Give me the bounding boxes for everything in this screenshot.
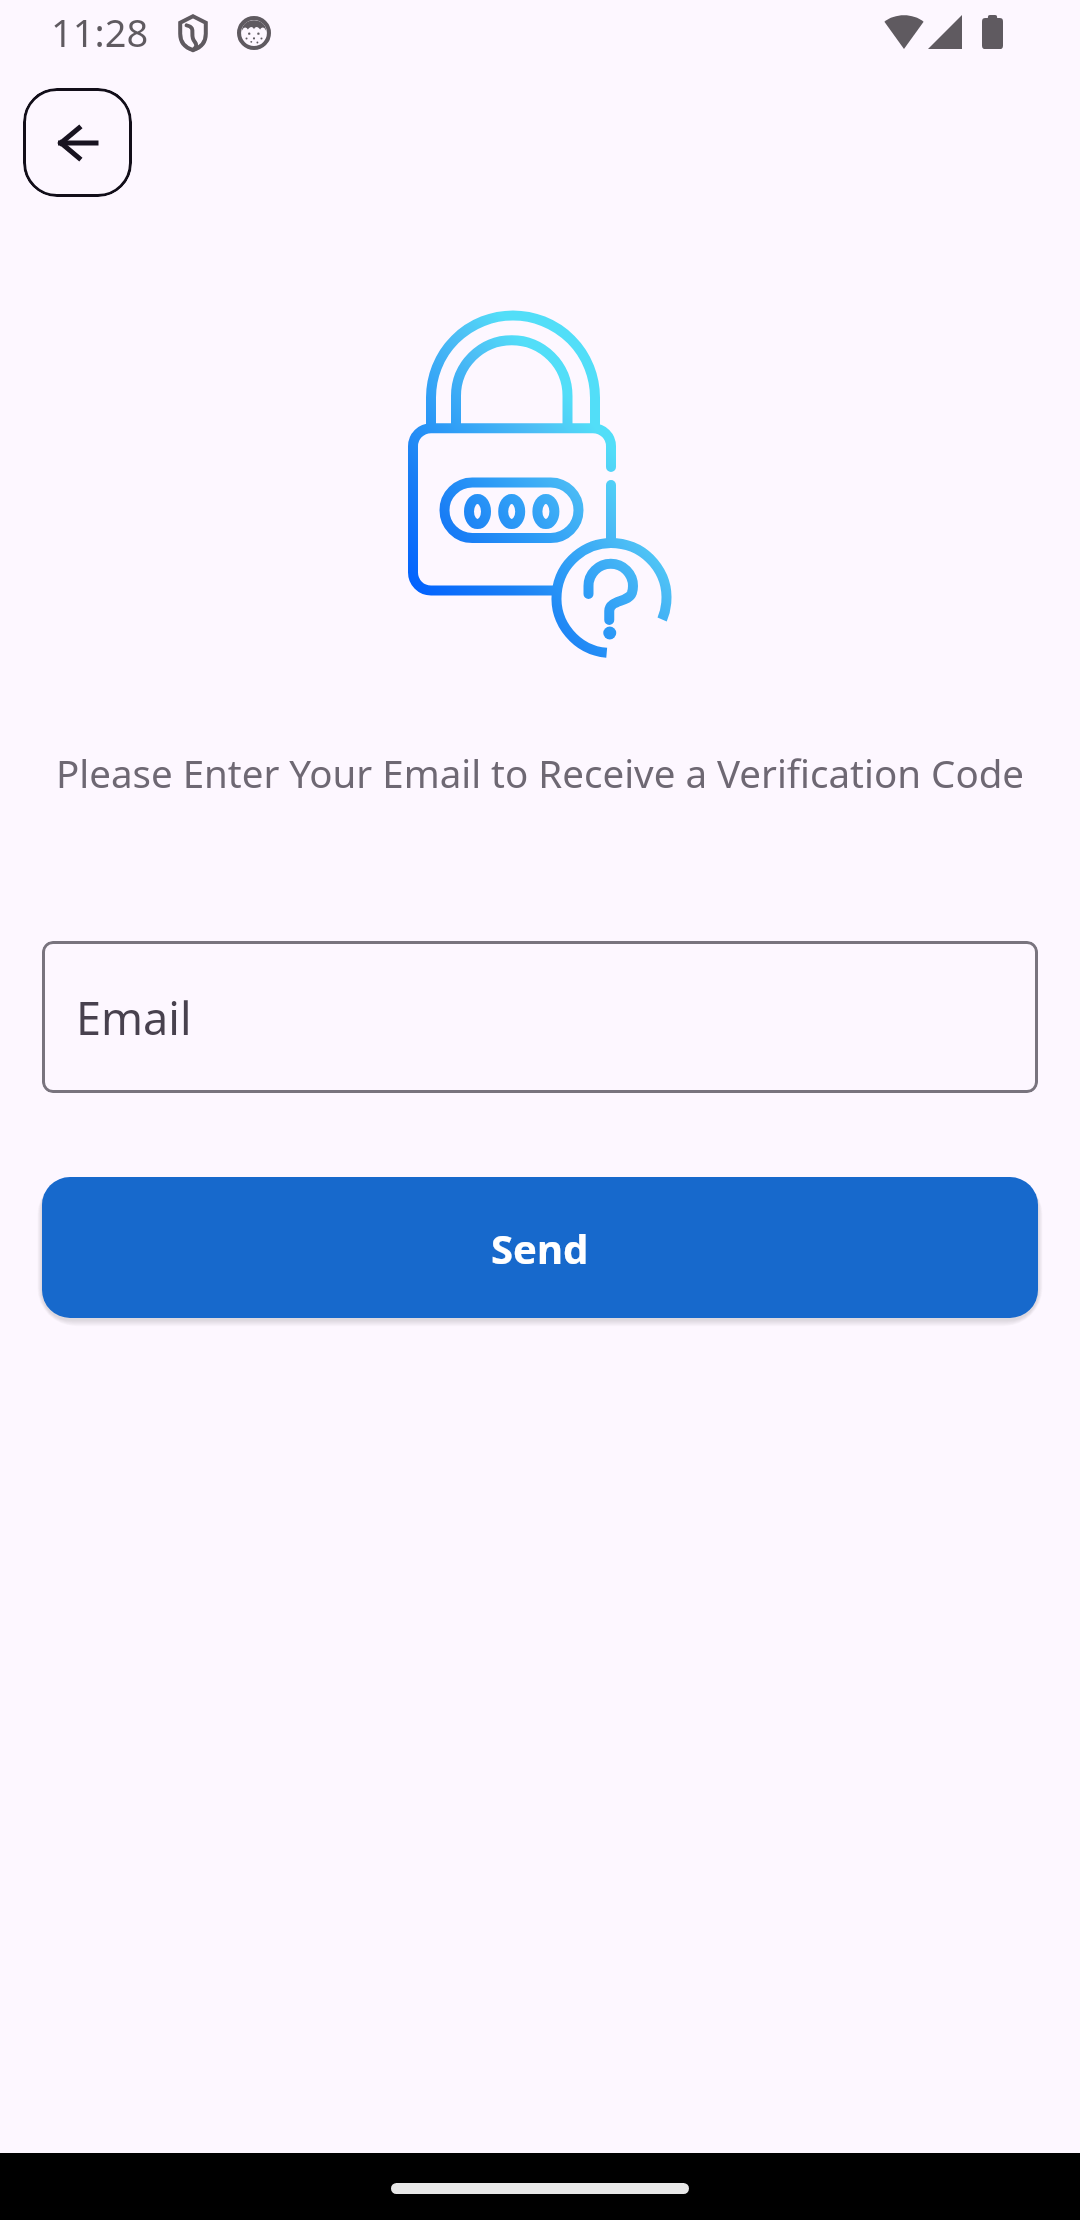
- button[interactable]: Send: [42, 1177, 1038, 1318]
- staticText: 11:28: [51, 6, 149, 58]
- button[interactable]: Email: [42, 941, 1038, 1093]
- button[interactable]: Back: [23, 88, 132, 197]
- staticText: Send: [491, 1221, 589, 1275]
- staticText: Email: [76, 987, 192, 1048]
- staticText: Please Enter Your Email to Receive a Ver…: [40, 747, 1040, 799]
